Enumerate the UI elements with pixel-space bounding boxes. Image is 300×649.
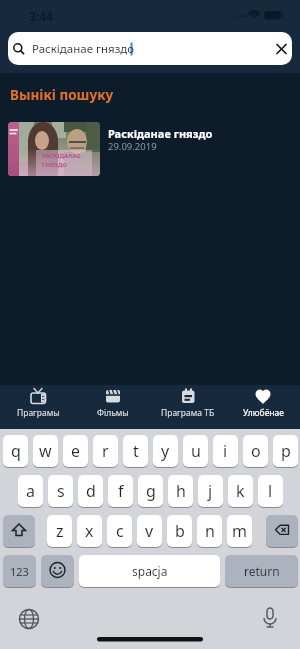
button[interactable]: i — [213, 435, 238, 468]
staticText: РАСКІДАНАЕ — [42, 152, 81, 160]
button[interactable]: n — [197, 515, 222, 548]
staticText: p — [281, 440, 291, 462]
staticText: x — [85, 520, 94, 542]
button[interactable]: t — [123, 435, 148, 468]
button[interactable] — [14, 604, 44, 634]
button[interactable]: m — [227, 515, 252, 548]
staticText: u — [191, 440, 201, 462]
staticText: y — [161, 440, 170, 462]
button[interactable]: Раскіданае гняздо — [8, 32, 292, 65]
staticText: d — [86, 480, 96, 502]
button[interactable]: 123 — [3, 555, 36, 588]
button[interactable]: Праграмы — [3, 385, 73, 429]
button[interactable]: o — [243, 435, 268, 468]
button[interactable]: d — [78, 475, 103, 508]
staticText: n — [205, 520, 215, 542]
staticText: Праграмы — [17, 407, 60, 419]
staticText: h — [176, 480, 186, 502]
staticText: i — [223, 440, 228, 462]
button[interactable]: u — [183, 435, 208, 468]
button[interactable]: j — [198, 475, 223, 508]
staticText: j — [208, 480, 213, 502]
button[interactable]: q — [3, 435, 28, 468]
button[interactable]: l — [258, 475, 283, 508]
staticText: Раскіданае гняздо — [108, 126, 213, 141]
button[interactable]: z — [47, 515, 72, 548]
staticText: Фільмы — [97, 407, 129, 419]
button[interactable]: f — [108, 475, 133, 508]
staticText: s — [57, 480, 65, 502]
button[interactable]: РАСКІДАНАЕ — [8, 122, 292, 176]
button[interactable]: v — [137, 515, 162, 548]
staticText: k — [236, 480, 245, 502]
staticText: b — [175, 520, 185, 542]
button[interactable]: g — [138, 475, 163, 508]
staticText: z — [56, 520, 64, 542]
staticText: q — [11, 440, 21, 462]
staticText: g — [146, 480, 156, 502]
staticText: a — [26, 480, 35, 502]
button[interactable]: y — [153, 435, 178, 468]
button[interactable]: c — [107, 515, 132, 548]
button[interactable]: h — [168, 475, 193, 508]
button[interactable]: e — [63, 435, 88, 468]
button[interactable] — [255, 602, 285, 632]
button[interactable] — [3, 515, 35, 548]
button[interactable]: k — [228, 475, 253, 508]
staticText: e — [71, 440, 81, 462]
button[interactable]: s — [48, 475, 73, 508]
button[interactable]: w — [33, 435, 58, 468]
button[interactable]: spacja — [79, 555, 220, 588]
staticText: Раскіданае гняздо — [32, 41, 135, 57]
staticText: o — [251, 440, 261, 462]
button[interactable]: Фільмы — [78, 385, 148, 429]
button[interactable] — [266, 515, 298, 548]
staticText: t — [133, 440, 139, 462]
staticText: 29.09.2019 — [108, 140, 157, 153]
staticText: 123 — [10, 564, 29, 579]
staticText: m — [232, 520, 247, 542]
staticText: ГНЯЗДО — [42, 161, 67, 169]
staticText: r — [102, 440, 109, 462]
button[interactable]: Праграма ТБ — [153, 385, 223, 429]
button[interactable]: r — [93, 435, 118, 468]
button[interactable]: p — [273, 435, 298, 468]
button[interactable]: b — [167, 515, 192, 548]
staticText: f — [118, 480, 124, 502]
staticText: l — [268, 480, 273, 502]
button[interactable] — [41, 555, 74, 588]
button[interactable]: Улюбёнае — [228, 385, 298, 429]
staticText: Улюбёнае — [243, 407, 284, 419]
staticText: spacja — [132, 563, 168, 579]
button[interactable]: a — [18, 475, 43, 508]
button[interactable]: return — [225, 555, 298, 588]
staticText: 3:44 — [29, 8, 53, 24]
button[interactable]: x — [77, 515, 102, 548]
staticText: w — [39, 440, 52, 462]
staticText: Вынікі пошуку — [10, 86, 114, 104]
staticText: Праграма ТБ — [161, 407, 215, 419]
staticText: c — [116, 520, 124, 542]
staticText: return — [244, 563, 280, 579]
staticText: v — [145, 520, 154, 542]
